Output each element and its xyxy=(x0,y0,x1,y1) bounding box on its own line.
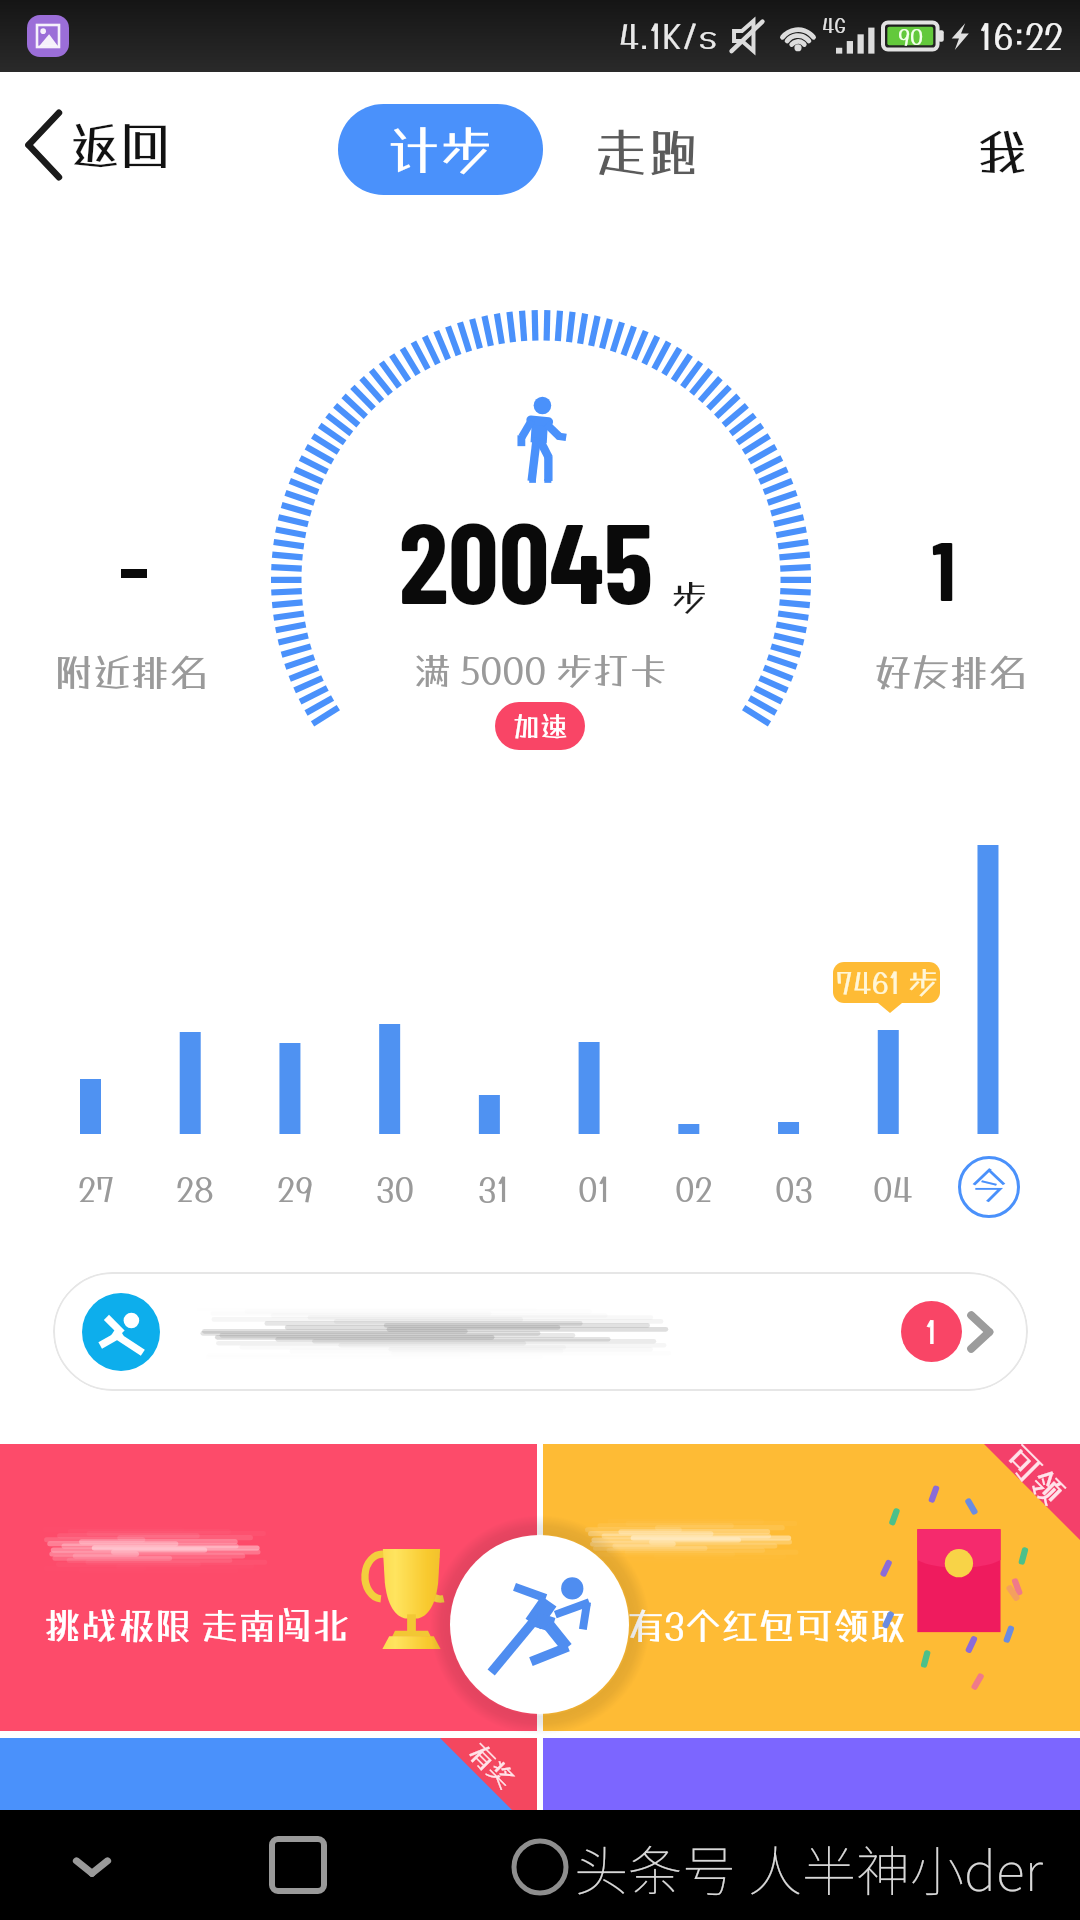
staticText: 满 5000 步打卡 xyxy=(414,649,667,693)
other: Recents xyxy=(510,1837,570,1897)
staticText: 04 xyxy=(873,1170,913,1209)
staticText: 28 xyxy=(176,1170,214,1209)
button[interactable]: 加速 xyxy=(495,702,585,750)
staticText: 我 xyxy=(977,122,1027,181)
staticText: 01 xyxy=(578,1170,611,1209)
staticText: 头条号 人半神小der xyxy=(574,1828,1043,1906)
staticText: 步 xyxy=(671,576,708,618)
staticText: 4G xyxy=(822,13,846,37)
staticText: 1 xyxy=(932,519,956,617)
staticText: 20045 xyxy=(399,492,653,626)
button[interactable]: Back xyxy=(66,1839,118,1891)
staticText: 有3个红包可领取 xyxy=(627,1604,907,1648)
staticText: 30 xyxy=(376,1170,414,1209)
button[interactable]: 挑战极限 走南闯北 xyxy=(0,1444,537,1731)
button[interactable]: 有奖 xyxy=(0,1738,537,1810)
button[interactable]: 今 xyxy=(958,1156,1020,1218)
button[interactable]: 计步 xyxy=(338,104,543,195)
staticText: 29 xyxy=(277,1170,314,1209)
staticText: 可领 xyxy=(998,1438,1072,1513)
staticText: 有奖 xyxy=(463,1736,522,1795)
staticText: 1 xyxy=(925,1313,938,1351)
staticText: 附近排名 xyxy=(55,650,208,695)
staticText: 走跑 xyxy=(595,122,700,183)
button[interactable]: 返回 xyxy=(18,102,176,188)
button[interactable]: 1 xyxy=(53,1272,1028,1391)
button[interactable]: 开始跑步 xyxy=(450,1535,629,1714)
staticText: 90 xyxy=(898,23,924,49)
button[interactable]: 我 xyxy=(963,104,1041,199)
staticText: 计步 xyxy=(388,119,493,180)
button[interactable]: 有3个红包可领取 xyxy=(543,1444,1080,1731)
button[interactable]: 附近排名 xyxy=(31,520,231,700)
button[interactable]: 走跑 xyxy=(585,104,710,201)
staticText: 今 xyxy=(970,1163,1009,1208)
staticText: 03 xyxy=(775,1170,813,1209)
staticText: 7461 步 xyxy=(836,965,938,1000)
staticText: 加速 xyxy=(512,710,569,743)
staticText: 31 xyxy=(478,1170,510,1209)
staticText: 挑战极限 走南闯北 xyxy=(44,1604,350,1648)
button[interactable]: 1 xyxy=(850,510,1050,700)
button[interactable]: Home xyxy=(272,1839,324,1891)
staticText: 返回 xyxy=(70,116,170,175)
staticText: 好友排名 xyxy=(874,650,1027,695)
staticText: 4.1K/s xyxy=(619,17,717,56)
button[interactable]: Screenshot xyxy=(27,15,69,57)
staticText: 27 xyxy=(78,1170,115,1209)
staticText: 16:22 xyxy=(979,16,1064,57)
staticText: 02 xyxy=(675,1170,713,1209)
